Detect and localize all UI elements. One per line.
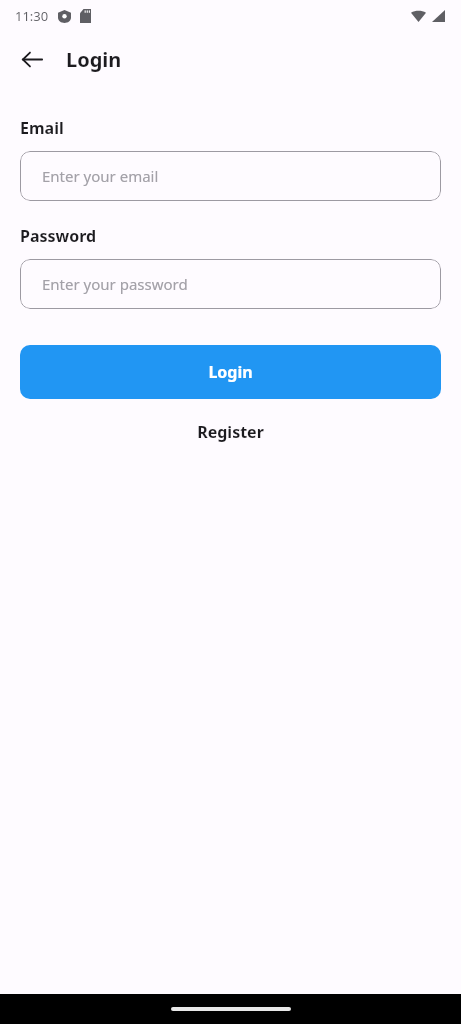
button[interactable]: Back — [10, 37, 54, 81]
staticText: Enter your email — [42, 166, 159, 186]
staticText: Email — [20, 117, 64, 139]
staticText: Enter your password — [42, 274, 188, 294]
button[interactable]: Login — [20, 345, 441, 399]
button[interactable]: Enter your email — [20, 151, 441, 201]
button[interactable]: Register — [20, 417, 441, 447]
staticText: Password — [20, 225, 97, 247]
button[interactable]: Enter your password — [20, 259, 441, 309]
staticText: Register — [197, 421, 264, 443]
staticText: Login — [208, 361, 253, 383]
staticText: 11:30 — [15, 7, 49, 25]
staticText: Login — [66, 46, 122, 73]
